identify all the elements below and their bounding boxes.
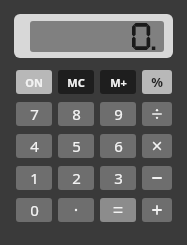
- staticText: 3: [114, 168, 123, 188]
- staticText: 6: [114, 136, 123, 156]
- button[interactable]: Decimal point: [58, 198, 94, 222]
- button[interactable]: 9: [100, 102, 136, 126]
- button[interactable]: 3: [100, 166, 136, 190]
- button[interactable]: 7: [16, 102, 52, 126]
- button[interactable]: Equals: [100, 198, 136, 222]
- button[interactable]: 6: [100, 134, 136, 158]
- button[interactable]: ON: [16, 70, 52, 94]
- button[interactable]: 5: [58, 134, 94, 158]
- button[interactable]: 2: [58, 166, 94, 190]
- button[interactable]: Minus: [142, 166, 172, 190]
- button[interactable]: 4: [16, 134, 52, 158]
- staticText: M+: [110, 75, 127, 90]
- staticText: %: [151, 73, 163, 91]
- staticText: 8: [72, 104, 81, 124]
- staticText: 1: [30, 168, 39, 188]
- staticText: 4: [30, 136, 39, 156]
- staticText: 9: [114, 104, 123, 124]
- button[interactable]: Multiply: [142, 134, 172, 158]
- button[interactable]: 8: [58, 102, 94, 126]
- staticText: 7: [30, 104, 39, 124]
- button[interactable]: Plus: [142, 198, 172, 222]
- button[interactable]: %: [142, 70, 172, 94]
- button[interactable]: 0: [16, 198, 52, 222]
- button[interactable]: 1: [16, 166, 52, 190]
- staticText: MC: [67, 75, 85, 90]
- button[interactable]: Divide: [142, 102, 172, 126]
- button[interactable]: MC: [58, 70, 94, 94]
- staticText: 2: [72, 168, 81, 188]
- button[interactable]: M+: [100, 70, 136, 94]
- staticText: 5: [72, 136, 81, 156]
- staticText: ON: [25, 75, 43, 90]
- staticText: 0: [30, 200, 39, 220]
